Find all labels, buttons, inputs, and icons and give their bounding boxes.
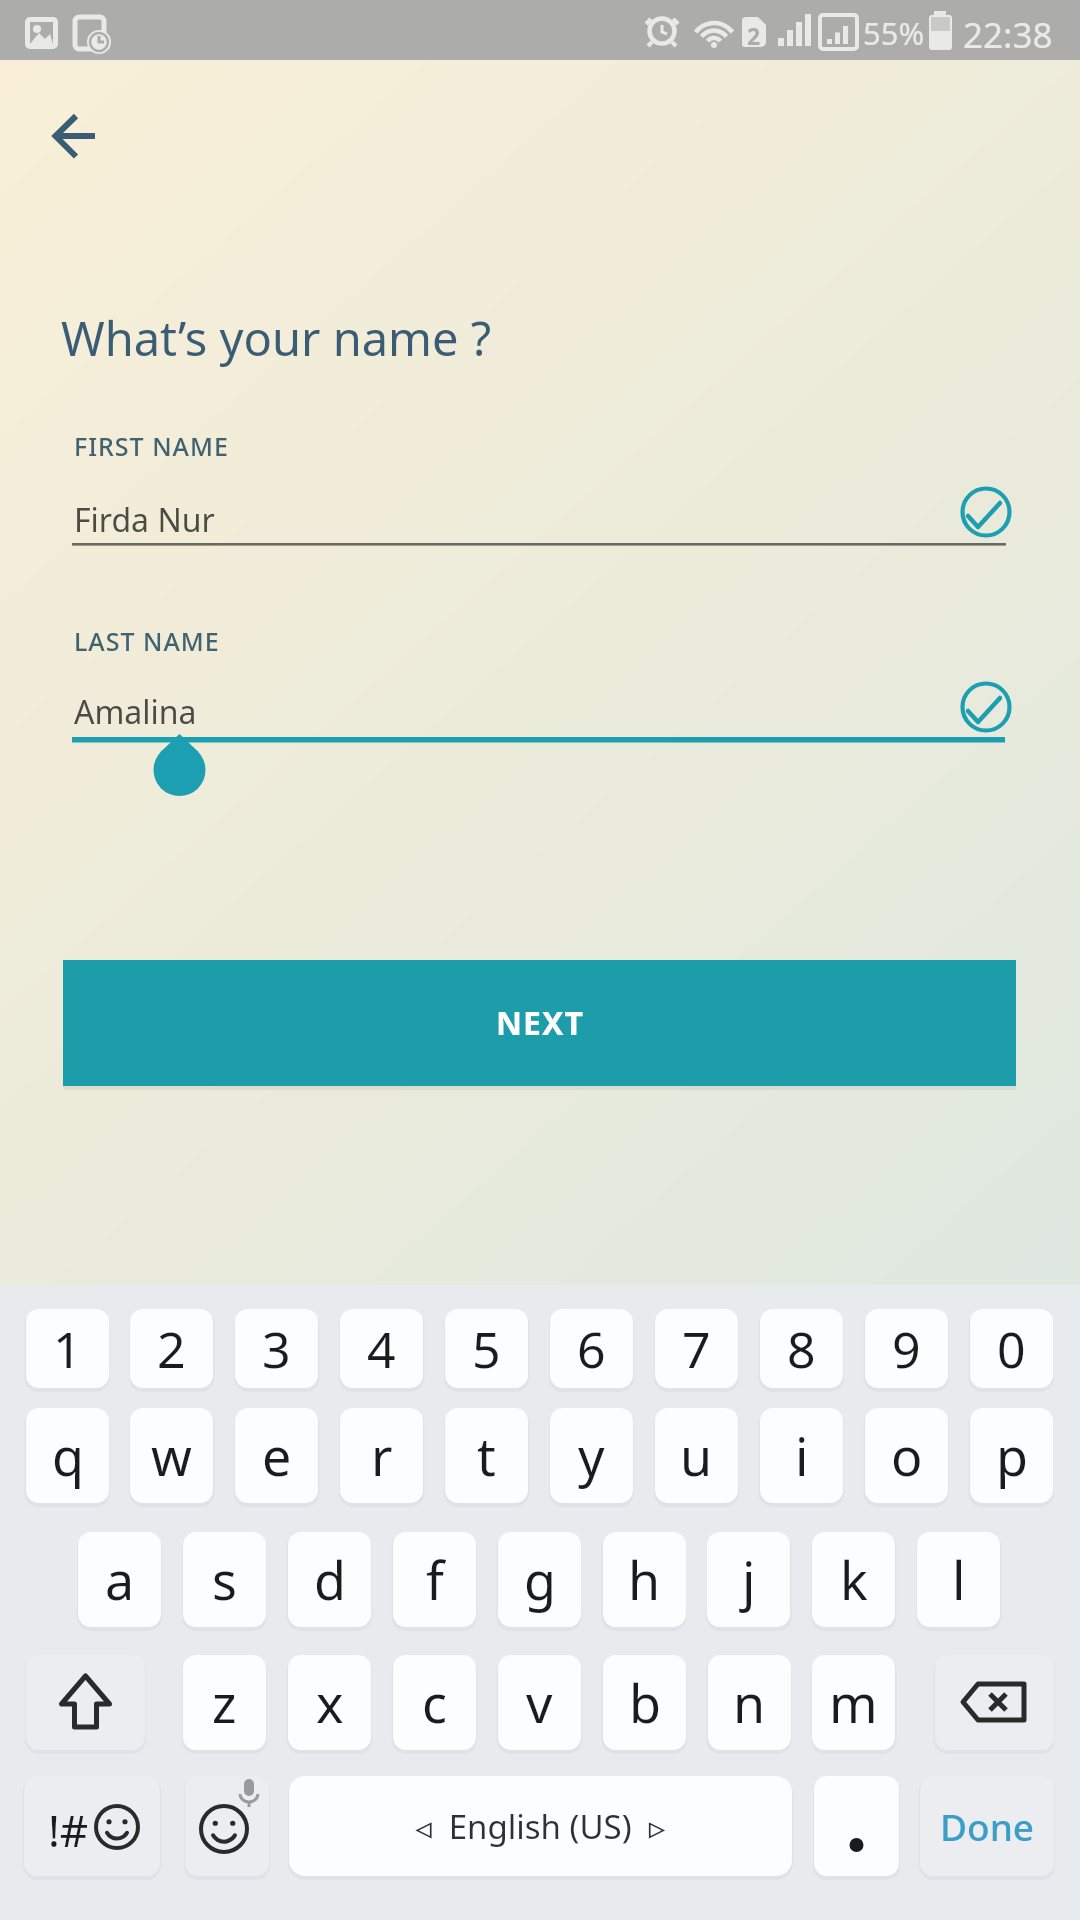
staticText: m [829, 1667, 878, 1738]
button[interactable] [24, 1776, 160, 1876]
staticText: !# [48, 1800, 89, 1860]
staticText: r [371, 1420, 393, 1491]
staticText: n [733, 1667, 766, 1738]
staticText: q [52, 1420, 84, 1491]
staticText: LAST NAME [74, 624, 220, 658]
button[interactable]: y [550, 1408, 633, 1503]
button[interactable]: Done [920, 1776, 1054, 1876]
staticText: a [105, 1544, 135, 1615]
staticText: Firda Nur [74, 498, 215, 542]
staticText: 22:38 [963, 11, 1053, 59]
button[interactable]: 1 [26, 1309, 109, 1388]
staticText: Done [940, 1801, 1035, 1851]
button[interactable]: j [707, 1532, 790, 1627]
staticText: h [628, 1544, 661, 1615]
staticText: f [426, 1544, 444, 1615]
staticText: 9 [892, 1315, 921, 1383]
button[interactable]: s [183, 1532, 266, 1627]
staticText: z [212, 1667, 237, 1738]
staticText: 6 [577, 1315, 606, 1383]
button[interactable]: 9 [865, 1309, 948, 1388]
button[interactable]: 5 [445, 1309, 528, 1388]
button[interactable]: o [865, 1408, 948, 1503]
staticText: What’s your name ? [61, 306, 492, 370]
button[interactable]: ◃ English (US) ▹ [289, 1776, 792, 1876]
button[interactable]: p [970, 1408, 1053, 1503]
button[interactable]: x [288, 1655, 371, 1750]
staticText: k [840, 1544, 868, 1615]
button[interactable]: b [603, 1655, 686, 1750]
button[interactable]: 3 [235, 1309, 318, 1388]
button[interactable] [63, 470, 1016, 550]
button[interactable]: z [183, 1655, 266, 1750]
staticText: t [477, 1420, 496, 1491]
button[interactable]: q [26, 1408, 109, 1503]
staticText: 2 [747, 20, 761, 51]
button[interactable]: d [288, 1532, 371, 1627]
button[interactable]: i [760, 1408, 843, 1503]
button[interactable]: v [498, 1655, 581, 1750]
button[interactable]: 4 [340, 1309, 423, 1388]
staticText: d [314, 1544, 346, 1615]
button[interactable] [935, 1655, 1054, 1750]
button[interactable]: g [498, 1532, 581, 1627]
staticText: l [952, 1544, 966, 1615]
staticText: 7 [682, 1315, 711, 1383]
staticText: 55% [863, 12, 925, 54]
staticText: g [524, 1544, 556, 1615]
staticText: j [742, 1544, 756, 1615]
staticText: i [795, 1420, 809, 1491]
button[interactable]: c [393, 1655, 476, 1750]
staticText: 5 [472, 1315, 501, 1383]
staticText: c [422, 1667, 447, 1738]
button[interactable]: u [655, 1408, 738, 1503]
button[interactable]: e [235, 1408, 318, 1503]
staticText: y [578, 1420, 605, 1491]
staticText: 8 [787, 1315, 816, 1383]
button[interactable] [63, 665, 1016, 745]
staticText: Amalina [74, 690, 197, 734]
button[interactable]: r [340, 1408, 423, 1503]
button[interactable]: h [603, 1532, 686, 1627]
button[interactable]: n [708, 1655, 791, 1750]
staticText: 3 [262, 1315, 291, 1383]
button[interactable]: l [917, 1532, 1000, 1627]
staticText: u [680, 1420, 713, 1491]
staticText: FIRST NAME [74, 429, 229, 463]
button[interactable]: 6 [550, 1309, 633, 1388]
button[interactable] [814, 1776, 899, 1876]
button[interactable] [185, 1776, 269, 1876]
staticText: 2 [157, 1315, 186, 1383]
staticText: ◃ English (US) ▹ [415, 1804, 666, 1849]
staticText: 0 [997, 1315, 1026, 1383]
staticText: b [629, 1667, 661, 1738]
button[interactable]: f [393, 1532, 476, 1627]
staticText: s [212, 1544, 237, 1615]
staticText: e [262, 1420, 292, 1491]
staticText: v [526, 1667, 553, 1738]
button[interactable] [26, 1655, 145, 1750]
button[interactable]: w [130, 1408, 213, 1503]
button[interactable]: a [78, 1532, 161, 1627]
button[interactable]: t [445, 1408, 528, 1503]
staticText: NEXT [496, 1001, 584, 1045]
button[interactable]: k [812, 1532, 895, 1627]
staticText: w [151, 1420, 192, 1491]
button[interactable]: 2 [130, 1309, 213, 1388]
staticText: 1 [53, 1315, 82, 1383]
button[interactable]: 8 [760, 1309, 843, 1388]
button[interactable]: m [812, 1655, 895, 1750]
staticText: 4 [367, 1315, 396, 1383]
button[interactable] [38, 100, 113, 172]
staticText: p [996, 1420, 1028, 1491]
button[interactable]: 0 [970, 1309, 1053, 1388]
staticText: o [891, 1420, 923, 1491]
button[interactable]: 7 [655, 1309, 738, 1388]
button[interactable]: NEXT [63, 960, 1016, 1086]
staticText: x [316, 1667, 344, 1738]
